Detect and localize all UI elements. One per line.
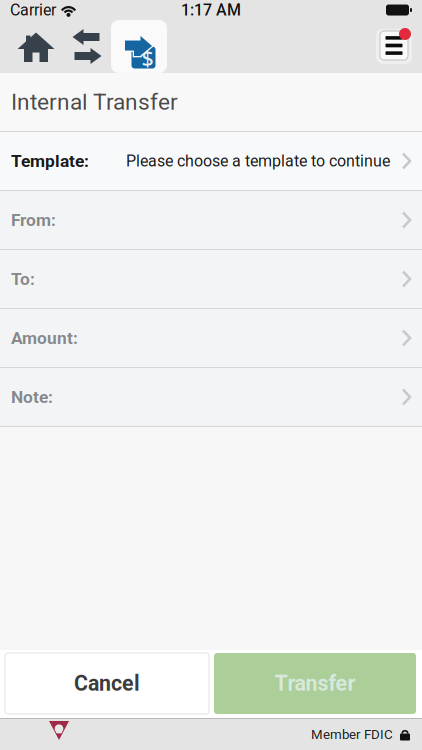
staticText: Cancel	[74, 671, 140, 696]
button[interactable]: Home	[8, 20, 64, 73]
staticText: Internal Transfer	[11, 89, 178, 115]
button[interactable]: To:	[0, 250, 422, 308]
staticText: Template:	[11, 151, 89, 171]
staticText: Transfer	[274, 671, 355, 696]
button[interactable]: Note:	[0, 368, 422, 426]
button[interactable]: From:	[0, 191, 422, 249]
staticText: $	[141, 43, 153, 72]
button[interactable]: Transfers	[59, 20, 115, 73]
staticText: 1:17 AM	[181, 1, 241, 19]
staticText: Note:	[11, 387, 53, 407]
staticText: Amount:	[11, 328, 78, 348]
staticText: Please choose a template to continue	[126, 152, 390, 170]
button[interactable]: Menu	[376, 29, 412, 64]
staticText: From:	[11, 210, 56, 230]
button[interactable]: Internal Transfer	[111, 20, 167, 73]
button[interactable]: Amount:	[0, 309, 422, 367]
staticText: Member FDIC	[311, 727, 393, 742]
button[interactable]: Transfer	[214, 653, 416, 714]
button[interactable]: Cancel	[5, 653, 209, 714]
button[interactable]: Template:	[0, 132, 422, 190]
staticText: Carrier	[10, 1, 56, 19]
staticText: To:	[11, 269, 35, 289]
